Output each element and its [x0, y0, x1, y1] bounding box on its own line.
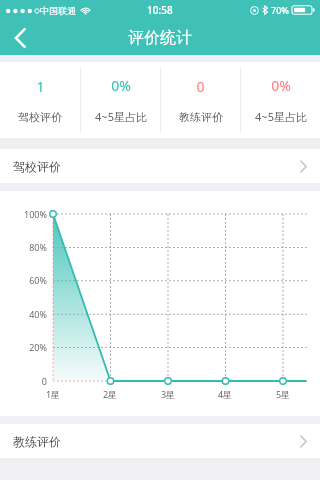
staticText: 4星 [210, 388, 240, 400]
button[interactable]: 驾校评价 [0, 149, 320, 183]
staticText: 80% [0, 241, 47, 253]
staticText: 60% [0, 274, 47, 286]
button[interactable]: 教练评价 [0, 424, 320, 458]
staticText: 0 [0, 375, 47, 387]
staticText: 2星 [95, 388, 125, 400]
staticText: 1 [36, 77, 45, 96]
button[interactable]: 0% [241, 62, 320, 138]
staticText: 3星 [153, 388, 183, 400]
staticText: 40% [0, 308, 47, 320]
staticText: 20% [0, 341, 47, 353]
staticText: 评价统计 [128, 28, 192, 48]
staticText: 中国联通 [40, 5, 76, 16]
staticText: 100% [0, 208, 47, 220]
button[interactable]: 0 [161, 62, 240, 138]
staticText: 0% [271, 76, 291, 95]
button[interactable]: 1 [0, 62, 80, 138]
staticText: 4~5星占比 [95, 109, 147, 124]
button[interactable]: Back [0, 20, 40, 55]
staticText: 驾校评价 [13, 159, 61, 174]
staticText: 70% [271, 4, 289, 16]
staticText: 5星 [268, 388, 298, 400]
staticText: 教练评价 [13, 434, 61, 449]
button[interactable]: 0% [81, 62, 160, 138]
staticText: 0 [196, 77, 205, 96]
staticText: 10:58 [147, 3, 173, 17]
staticText: 4~5星占比 [255, 109, 307, 124]
staticText: 驾校评价 [18, 110, 62, 124]
staticText: 教练评价 [179, 110, 223, 124]
staticText: 1星 [38, 388, 68, 400]
staticText: 0% [111, 76, 131, 95]
